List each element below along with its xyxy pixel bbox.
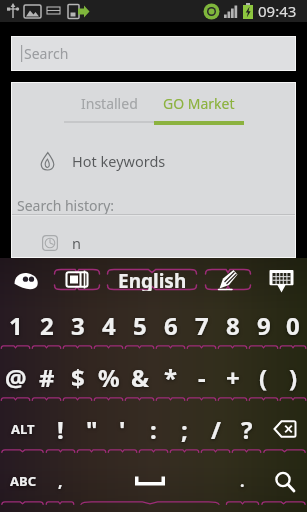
staticText: % (98, 361, 120, 394)
staticText: ' (119, 413, 126, 446)
staticText: @ (5, 361, 27, 394)
button[interactable]: ALT (0, 410, 45, 462)
staticText: 5 (133, 309, 147, 342)
button[interactable]: + (217, 358, 248, 410)
staticText: English (118, 268, 187, 291)
button[interactable]: ( (248, 358, 279, 410)
staticText: ) (289, 361, 298, 394)
button[interactable]: & (124, 358, 155, 410)
button[interactable]: 1 (0, 306, 31, 358)
button[interactable]: 0 (279, 306, 307, 358)
staticText: Search history: (17, 196, 115, 215)
button[interactable]: / (200, 410, 231, 462)
staticText: Hot keywords (72, 151, 166, 171)
button[interactable]: * (155, 358, 186, 410)
button[interactable]: Space (75, 462, 225, 512)
button[interactable]: 3 (62, 306, 93, 358)
button[interactable]: # (31, 358, 62, 410)
button[interactable]: 7 (186, 306, 217, 358)
staticText: ? (241, 413, 253, 446)
staticText: ( (259, 361, 268, 394)
button[interactable]: 4 (93, 306, 124, 358)
button[interactable]: 2 (31, 306, 62, 358)
button[interactable]: Search (12, 37, 295, 70)
staticText: 09:43 (258, 1, 297, 21)
button[interactable]: Backspace (262, 410, 307, 462)
button[interactable]: 5 (124, 306, 155, 358)
staticText: ALT (11, 420, 35, 438)
staticText: * (164, 361, 178, 394)
staticText: ! (57, 413, 64, 446)
button[interactable]: Search (260, 462, 307, 512)
staticText: + (226, 361, 240, 394)
button[interactable]: ABC (0, 462, 45, 512)
staticText: . (240, 470, 245, 492)
staticText: / (211, 413, 221, 446)
button[interactable]: Hide keyboard (258, 258, 304, 306)
staticText: n (72, 233, 81, 253)
button[interactable]: % (93, 358, 124, 410)
staticText: - (198, 361, 206, 394)
staticText: Installed (81, 94, 138, 113)
button[interactable]: - (186, 358, 217, 410)
button[interactable]: ? (231, 410, 262, 462)
staticText: ; (181, 413, 188, 446)
button[interactable]: ) (279, 358, 307, 410)
button[interactable]: . (225, 462, 260, 512)
staticText: 9 (257, 309, 271, 342)
button[interactable]: 8 (217, 306, 248, 358)
staticText: GO Market (163, 94, 235, 113)
staticText: 3 (71, 309, 85, 342)
button[interactable]: : (138, 410, 169, 462)
button[interactable]: n (12, 223, 295, 263)
button[interactable]: $ (62, 358, 93, 410)
button[interactable]: English (106, 268, 198, 291)
button[interactable]: Handwriting input (204, 268, 252, 291)
staticText: Search (24, 44, 69, 63)
staticText: & (131, 361, 149, 394)
staticText: " (86, 413, 98, 446)
button[interactable]: Installed (64, 86, 154, 120)
staticText: , (58, 470, 63, 492)
staticText: 0 (286, 309, 300, 342)
staticText: ABC (10, 472, 36, 490)
staticText: $ (71, 361, 85, 394)
button[interactable]: Hot keywords (12, 135, 295, 187)
button[interactable]: , (45, 462, 75, 512)
button[interactable]: GO Market (154, 86, 244, 120)
staticText: 6 (164, 309, 178, 342)
button[interactable]: 9 (248, 306, 279, 358)
staticText: 1 (9, 309, 23, 342)
button[interactable]: ; (169, 410, 200, 462)
staticText: 8 (226, 309, 240, 342)
button[interactable]: " (76, 410, 107, 462)
button[interactable]: Switch input method (53, 268, 101, 291)
button[interactable]: ! (45, 410, 76, 462)
button[interactable]: @ (0, 358, 31, 410)
staticText: # (39, 361, 55, 394)
staticText: 7 (195, 309, 209, 342)
button[interactable]: ' (107, 410, 138, 462)
button[interactable]: 6 (155, 306, 186, 358)
staticText: 2 (40, 309, 54, 342)
staticText: : (150, 413, 157, 446)
button[interactable]: GO Keyboard menu (2, 258, 51, 306)
staticText: 4 (102, 309, 116, 342)
